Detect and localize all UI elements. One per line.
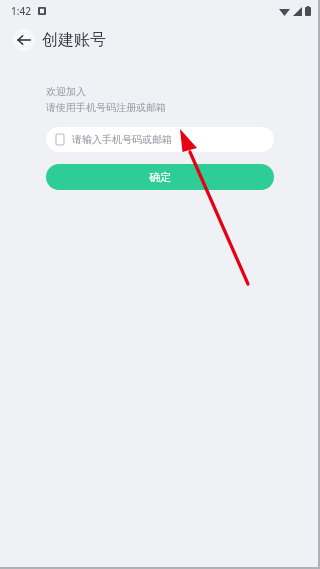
button[interactable]: 确定 — [46, 164, 274, 190]
staticText: 确定 — [149, 170, 171, 184]
staticText: 欢迎加入 — [46, 85, 86, 98]
staticText: 创建账号 — [42, 30, 106, 50]
staticText: 1:42 — [11, 4, 31, 18]
button[interactable]: 请输入手机号码或邮箱 — [46, 127, 274, 152]
staticText: 请输入手机号码或邮箱 — [72, 133, 172, 146]
button[interactable]: Back — [13, 29, 35, 51]
staticText: 请使用手机号码注册或邮箱 — [46, 101, 166, 114]
